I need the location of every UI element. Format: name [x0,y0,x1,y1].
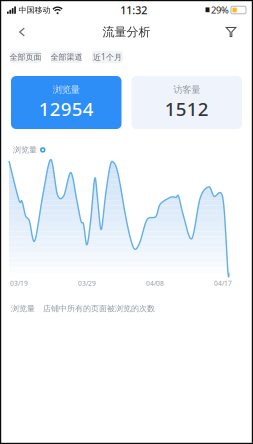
staticText: 近1个月 [93,52,122,62]
staticText: 流量分析 [102,25,150,39]
button[interactable]: 访客量 [131,76,242,129]
button[interactable]: 全部页面 [10,51,41,63]
staticText: 店铺中所有的页面被浏览的次数 [43,304,155,313]
button[interactable]: 近1个月 [92,51,123,63]
staticText: 29% [211,4,229,16]
staticText: 04/17 [214,279,232,288]
staticText: 浏览量 [53,84,80,95]
staticText: 访客量 [173,84,200,95]
button[interactable]: 返回 [7,21,37,43]
staticText: 浏览量 [13,145,37,155]
button[interactable]: 筛选 [216,21,246,43]
staticText: 03/19 [10,279,28,288]
staticText: 全部渠道 [50,52,82,62]
staticText: 12954 [39,96,94,121]
staticText: 全部页面 [9,52,41,62]
staticText: 03/29 [78,279,96,288]
button[interactable]: 浏览量 [11,76,121,129]
staticText: 中国移动 [18,5,50,15]
staticText: 11:32 [120,3,147,17]
staticText: 浏览量 [11,304,35,313]
staticText: 04/08 [146,279,164,288]
staticText: 1512 [165,96,209,121]
button[interactable]: 全部渠道 [51,51,82,63]
